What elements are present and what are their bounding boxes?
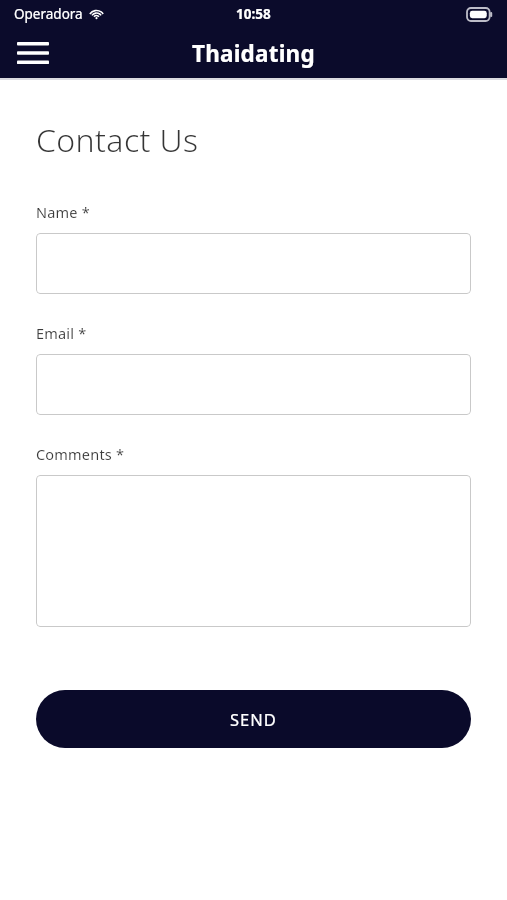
button[interactable]: Open navigation menu [10,31,56,75]
button[interactable]: SEND [36,690,471,748]
button[interactable]: Name input field [36,233,471,294]
staticText: Comments * [36,444,125,464]
staticText: SEND [230,708,277,730]
button[interactable]: Email input field [36,354,471,415]
button[interactable]: Comments input field [36,475,471,627]
staticText: Name * [36,202,90,222]
staticText: Operadora [14,5,83,23]
staticText: Thaidating [192,38,315,69]
staticText: Email * [36,323,87,343]
staticText: Contact Us [36,118,199,162]
staticText: 10:58 [236,5,271,23]
